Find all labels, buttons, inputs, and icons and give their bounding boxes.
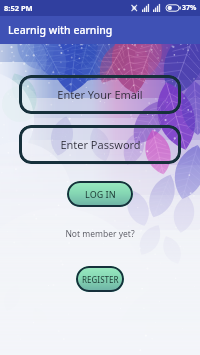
staticText: REGISTER (82, 274, 119, 285)
button[interactable]: Not member yet? (19, 228, 181, 240)
staticText: Enter Your Email (57, 87, 143, 102)
staticText: Learnig with earning (8, 23, 113, 37)
staticText: 37% (182, 3, 197, 13)
staticText: Enter Password (60, 137, 141, 152)
button[interactable]: LOG IN (67, 181, 133, 207)
button[interactable]: Enter Password (19, 125, 181, 164)
staticText: LOG IN (85, 188, 116, 200)
staticText: 8:52 PM (4, 3, 33, 13)
button[interactable]: REGISTER (76, 266, 124, 292)
button[interactable]: Enter Your Email (19, 75, 181, 114)
